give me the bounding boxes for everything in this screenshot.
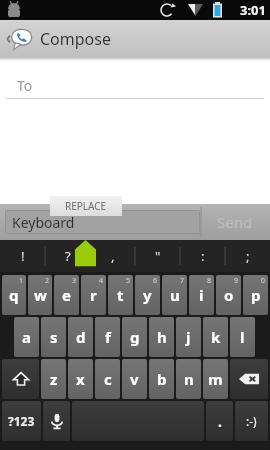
button[interactable]: e xyxy=(54,275,79,315)
staticText: , xyxy=(111,247,115,265)
staticText: w xyxy=(34,285,47,305)
button[interactable]: t xyxy=(108,275,133,315)
staticText: : xyxy=(201,247,205,265)
button[interactable]: Voice input xyxy=(43,401,70,441)
staticText: l xyxy=(240,327,245,347)
staticText: x xyxy=(76,369,85,389)
button[interactable]: Up xyxy=(0,20,270,58)
staticText: 3:01 xyxy=(240,1,266,19)
button[interactable]: r xyxy=(81,275,106,315)
button[interactable]: j xyxy=(176,317,201,357)
staticText: v xyxy=(130,369,139,389)
button[interactable]: :-) xyxy=(235,401,268,441)
staticText: Keyboard xyxy=(12,213,75,232)
button[interactable]: d xyxy=(68,317,93,357)
staticText: z xyxy=(50,369,58,389)
button[interactable]: Delete xyxy=(230,359,268,399)
button[interactable]: REPLACE xyxy=(50,196,122,216)
staticText: 0 xyxy=(261,276,266,286)
button[interactable]: Shift xyxy=(2,359,39,399)
staticText: ; xyxy=(246,247,250,265)
staticText: To xyxy=(17,76,33,95)
staticText: e xyxy=(62,285,71,305)
other: Up xyxy=(4,24,34,54)
button[interactable]: x xyxy=(68,359,93,399)
staticText: 8 xyxy=(207,276,212,286)
staticText: 5 xyxy=(126,276,131,286)
staticText: 3 xyxy=(72,276,77,286)
button[interactable]: ? xyxy=(45,240,90,272)
staticText: ? xyxy=(65,247,71,265)
staticText: Compose xyxy=(40,28,111,50)
staticText: Send xyxy=(217,212,253,232)
button[interactable]: " xyxy=(135,240,180,272)
staticText: y xyxy=(143,285,152,305)
staticText: s xyxy=(50,327,58,347)
staticText: 4 xyxy=(99,276,104,286)
staticText: p xyxy=(251,285,261,305)
staticText: 1 xyxy=(19,276,24,286)
staticText: a xyxy=(22,327,31,347)
staticText: ! xyxy=(21,247,25,265)
button[interactable]: u xyxy=(162,275,187,315)
button[interactable]: v xyxy=(122,359,147,399)
button[interactable]: c xyxy=(95,359,120,399)
staticText: q xyxy=(9,285,19,305)
staticText: REPLACE xyxy=(65,199,107,213)
staticText: c xyxy=(104,369,112,389)
button[interactable]: g xyxy=(122,317,147,357)
staticText: o xyxy=(224,285,234,305)
staticText: b xyxy=(157,369,167,389)
button[interactable]: ; xyxy=(225,240,270,272)
button[interactable]: n xyxy=(176,359,201,399)
staticText: h xyxy=(157,327,167,347)
staticText: 2 xyxy=(45,276,50,286)
button[interactable]: ! xyxy=(0,240,45,272)
button[interactable]: l xyxy=(230,317,255,357)
button[interactable]: To xyxy=(6,72,264,98)
button[interactable]: b xyxy=(149,359,174,399)
button[interactable]: s xyxy=(41,317,66,357)
staticText: :-) xyxy=(246,413,257,429)
button[interactable]: f xyxy=(95,317,120,357)
staticText: 6 xyxy=(153,276,158,286)
button[interactable]: ?123 xyxy=(2,401,41,441)
button[interactable]: k xyxy=(203,317,228,357)
button[interactable]: , xyxy=(90,240,135,272)
staticText: k xyxy=(211,327,221,347)
button[interactable]: Space xyxy=(72,401,204,441)
staticText: . xyxy=(218,412,222,431)
button[interactable]: Send xyxy=(200,204,270,240)
staticText: r xyxy=(90,285,97,305)
staticText: 7 xyxy=(180,276,185,286)
button[interactable]: w xyxy=(28,275,52,315)
staticText: 9 xyxy=(234,276,239,286)
button[interactable]: : xyxy=(180,240,225,272)
staticText: ?123 xyxy=(8,413,35,429)
button[interactable]: m xyxy=(203,359,228,399)
button[interactable]: y xyxy=(135,275,160,315)
staticText: n xyxy=(184,369,194,389)
staticText: i xyxy=(199,285,204,305)
staticText: f xyxy=(105,327,111,347)
button[interactable]: Keyboard xyxy=(5,210,200,234)
button[interactable]: h xyxy=(149,317,174,357)
staticText: g xyxy=(130,327,140,347)
staticText: u xyxy=(170,285,180,305)
button[interactable]: p xyxy=(243,275,268,315)
button[interactable]: q xyxy=(2,275,26,315)
button[interactable]: . xyxy=(206,401,233,441)
staticText: " xyxy=(155,247,161,265)
staticText: j xyxy=(186,327,191,347)
button[interactable]: a xyxy=(14,317,39,357)
button[interactable]: i xyxy=(189,275,214,315)
button[interactable]: z xyxy=(41,359,66,399)
staticText: m xyxy=(208,369,223,389)
staticText: d xyxy=(76,327,86,347)
button[interactable]: o xyxy=(216,275,241,315)
staticText: t xyxy=(117,285,124,305)
